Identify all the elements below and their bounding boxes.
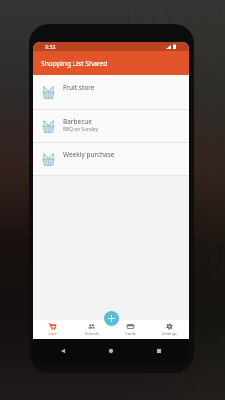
- staticText: BBQ on Sunday: [63, 126, 98, 133]
- button[interactable]: Fruit store: [33, 75, 189, 109]
- button[interactable]: Add new list: [104, 311, 119, 326]
- button[interactable]: Barbecue: [33, 110, 189, 142]
- button[interactable]: Settings: [150, 320, 189, 339]
- button[interactable]: Cards: [111, 320, 150, 339]
- staticText: Weekly purchase: [63, 150, 115, 159]
- staticText: Settings: [162, 331, 177, 336]
- button[interactable]: Weekly purchase: [33, 143, 189, 175]
- staticText: Lists: [48, 331, 57, 336]
- staticText: Cards: [125, 331, 136, 336]
- staticText: Shopping List Shared: [41, 59, 108, 68]
- button[interactable]: Friends: [72, 320, 111, 339]
- staticText: Friends: [85, 331, 99, 336]
- staticText: Fruit store: [63, 83, 95, 92]
- staticText: Barbecue: [63, 117, 93, 126]
- button[interactable]: Lists: [33, 320, 72, 339]
- staticText: 9:52: [45, 43, 56, 50]
